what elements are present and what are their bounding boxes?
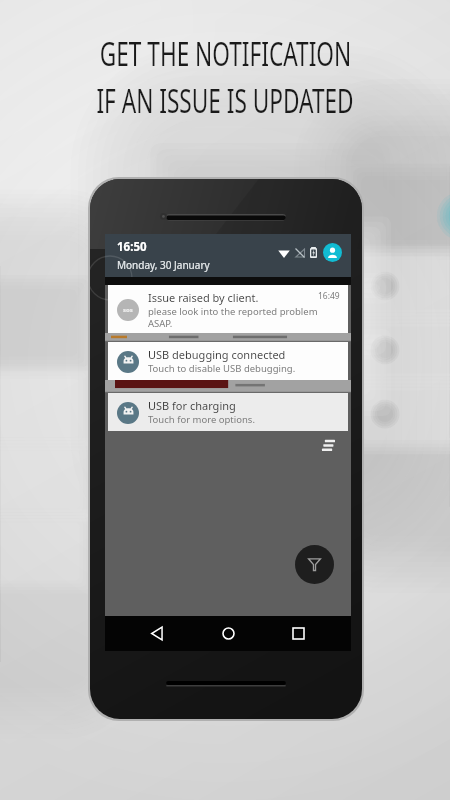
- button[interactable]: Back: [140, 616, 175, 651]
- button[interactable]: User account: [323, 243, 342, 262]
- button[interactable]: Home: [211, 616, 246, 651]
- staticText: 16:49: [318, 290, 340, 302]
- staticText: Touch to disable USB debugging.: [148, 362, 296, 375]
- staticText: 16:50: [117, 239, 147, 255]
- staticText: Monday, 30 January: [117, 258, 210, 272]
- button[interactable]: Recent apps: [281, 616, 316, 651]
- staticText: USB for charging: [148, 398, 340, 413]
- staticText: sos: [123, 306, 133, 314]
- staticText: IF AN ISSUE IS UPDATED: [96, 79, 354, 122]
- staticText: please look into the reported problem AS…: [148, 305, 318, 329]
- staticText: Touch for more options.: [148, 413, 255, 426]
- button[interactable]: sos: [108, 285, 348, 333]
- button[interactable]: 16:50: [105, 234, 351, 277]
- button[interactable]: Filter notifications: [295, 545, 334, 584]
- button[interactable]: Clear all notifications: [318, 435, 338, 455]
- staticText: USB debugging connected: [148, 347, 340, 362]
- staticText: Issue raised by client.: [148, 290, 318, 305]
- button[interactable]: USB for charging: [108, 393, 348, 431]
- staticText: GET THE NOTIFICATION: [99, 32, 351, 75]
- button[interactable]: USB debugging connected: [108, 342, 348, 380]
